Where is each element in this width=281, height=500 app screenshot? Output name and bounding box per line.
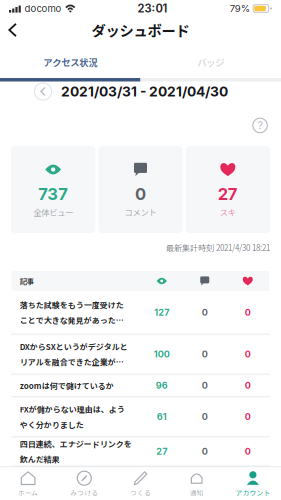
staticText: 61 [157, 412, 167, 421]
staticText: 79% [230, 4, 250, 13]
button[interactable]: 四日連続、エナジードリンクを [0, 437, 281, 466]
staticText: 737 [38, 186, 68, 202]
button[interactable]: みつける [56, 471, 112, 497]
staticText: FXが儲からない理由は、よう [20, 404, 125, 414]
button[interactable]: バッジ [140, 43, 281, 78]
staticText: みつける [70, 488, 98, 497]
staticText: 2021/03/31 - 2021/04/30 [61, 85, 228, 98]
staticText: ホーム [18, 488, 38, 497]
button[interactable]: 落ちた試験をもう一度受けた [0, 291, 281, 335]
staticText: コメント [124, 207, 156, 217]
staticText: 0 [202, 381, 208, 390]
staticText: 落ちた試験をもう一度受けた [20, 300, 124, 310]
staticText: やく分かりました [20, 420, 84, 429]
staticText: 0 [202, 447, 208, 456]
staticText: 0 [245, 349, 251, 359]
staticText: DXからSXというがデジタルと [20, 342, 128, 351]
button[interactable]: 通知 [169, 471, 225, 497]
button[interactable]: Help [253, 101, 281, 135]
staticText: 0 [202, 349, 208, 359]
staticText: 0 [245, 308, 251, 317]
staticText: ことで大きな発見があった… [20, 315, 124, 325]
staticText: 通知 [190, 488, 204, 497]
staticText: つくる [130, 488, 151, 497]
staticText: バッジ [197, 56, 224, 68]
staticText: スキ [220, 207, 236, 217]
staticText: 記事 [20, 276, 34, 286]
staticText: 0 [202, 412, 208, 421]
button[interactable]: Previous period [33, 81, 53, 101]
staticText: docomo [25, 4, 62, 13]
staticText: アカウント [235, 488, 270, 497]
button[interactable]: FXが儲からない理由は、よう [0, 397, 281, 437]
staticText: 27 [156, 447, 167, 456]
staticText: 96 [156, 381, 168, 390]
button[interactable]: zoomは何で儲けているか [0, 375, 281, 397]
staticText: 0 [245, 412, 251, 421]
staticText: 0 [245, 381, 251, 390]
button[interactable]: ホーム [0, 471, 56, 497]
button[interactable]: つくる [112, 471, 169, 497]
staticText: 27 [218, 186, 238, 202]
staticText: アクセス状況 [43, 56, 97, 68]
staticText: 23:01 [138, 3, 168, 14]
staticText: 四日連続、エナジードリンクを [20, 439, 132, 449]
staticText: 100 [154, 349, 170, 359]
staticText: zoomは何で儲けているか [20, 380, 114, 390]
staticText: 最新集計時刻 2021/4/30 18:21 [166, 242, 270, 253]
staticText: 127 [154, 308, 169, 317]
staticText: 0 [245, 447, 251, 456]
button[interactable]: DXからSXというがデジタルと [0, 335, 281, 375]
staticText: ダッシュボード [91, 22, 189, 38]
staticText: 全体ビュー [33, 207, 73, 217]
staticText: 0 [202, 308, 208, 317]
staticText: ? [258, 120, 263, 131]
staticText: 0 [135, 186, 146, 202]
button[interactable]: Back [0, 18, 25, 42]
button[interactable]: アクセス状況 [0, 43, 140, 78]
staticText: 飲んだ結果 [20, 454, 60, 464]
button[interactable]: アカウント [225, 471, 281, 497]
staticText: リアルを融合できた企業が… [20, 357, 124, 367]
